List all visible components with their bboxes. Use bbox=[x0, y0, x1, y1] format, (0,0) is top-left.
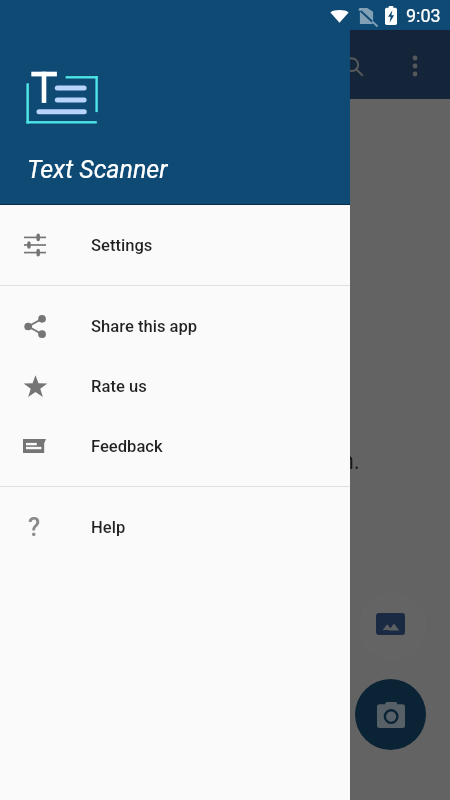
button[interactable]: Rate us bbox=[0, 356, 350, 416]
staticText: Text Scanner bbox=[27, 155, 168, 184]
button[interactable]: Pick image from gallery bbox=[360, 593, 426, 659]
staticText: Help bbox=[91, 518, 126, 537]
button[interactable]: Feedback bbox=[0, 416, 350, 476]
button[interactable]: Take photo bbox=[355, 679, 426, 750]
button[interactable]: Share this app bbox=[0, 296, 350, 356]
button[interactable]: More options bbox=[391, 42, 439, 90]
button[interactable]: Open navigation drawer bbox=[8, 41, 56, 89]
staticText: Pick an image to scan. bbox=[129, 448, 360, 475]
staticText: Feedback bbox=[91, 437, 163, 456]
staticText: Rate us bbox=[91, 377, 147, 396]
staticText: Share this app bbox=[91, 317, 198, 336]
button[interactable]: Settings bbox=[0, 215, 350, 275]
staticText: ? bbox=[28, 513, 41, 542]
staticText: Settings bbox=[91, 236, 153, 255]
button[interactable]: ? bbox=[0, 497, 350, 557]
staticText: 9:03 bbox=[406, 5, 441, 26]
button[interactable]: Search bbox=[329, 42, 377, 90]
